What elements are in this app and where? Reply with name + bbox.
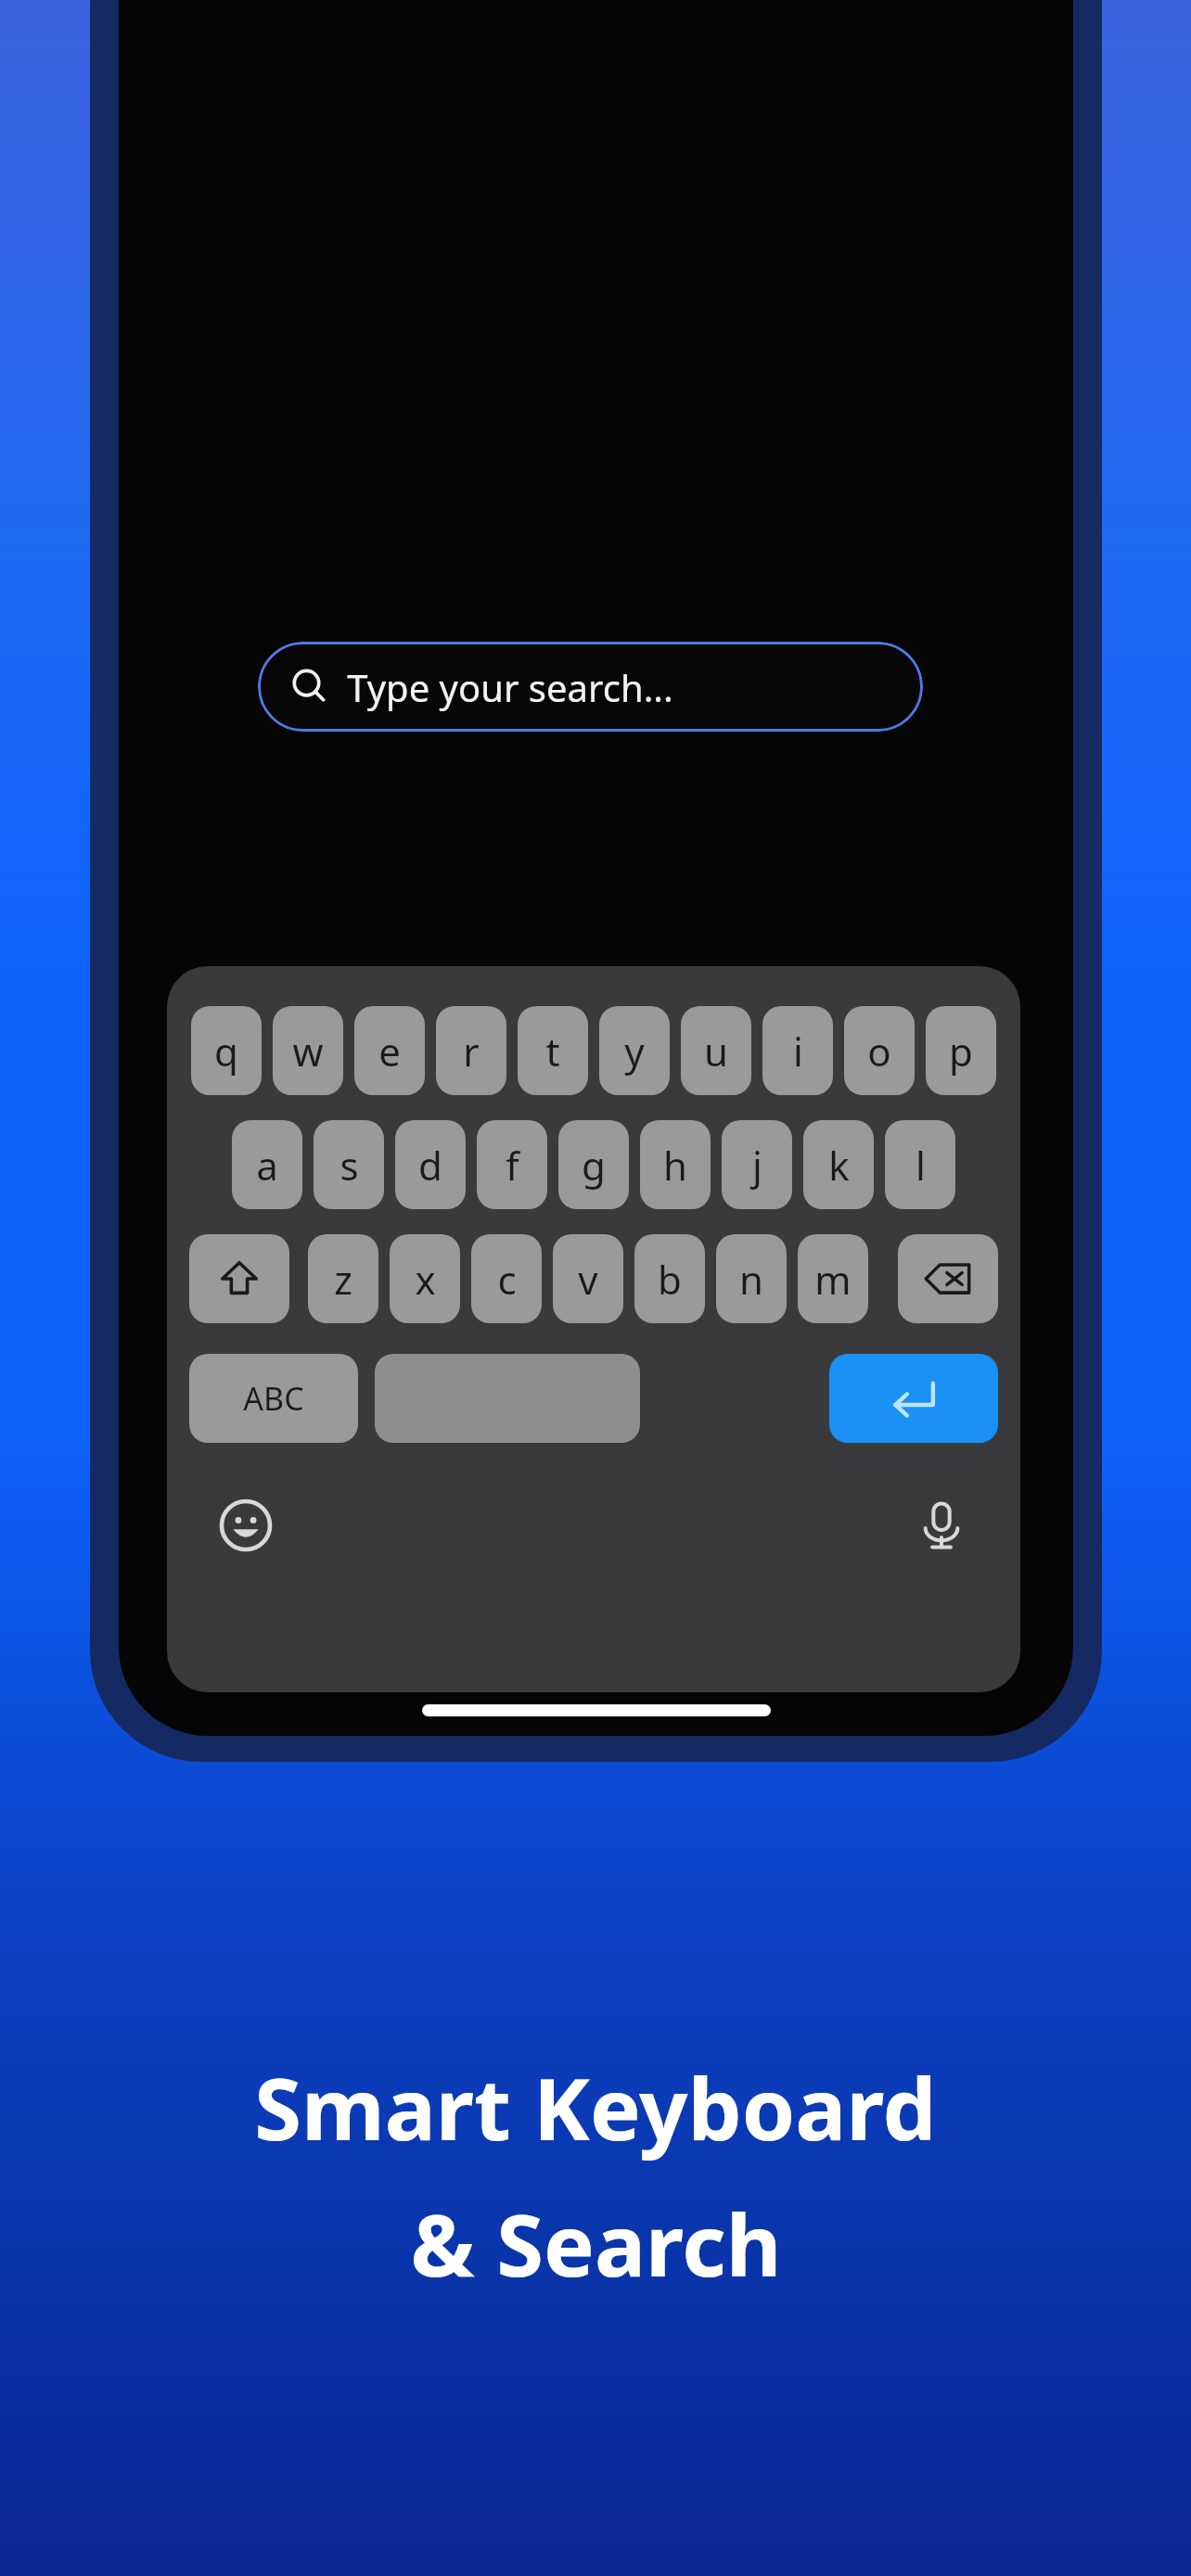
staticText: ABC [243, 1377, 304, 1420]
staticText: h [663, 1139, 687, 1192]
button[interactable]: u [681, 1006, 751, 1095]
button[interactable]: n [716, 1234, 787, 1323]
button[interactable]: f [477, 1120, 547, 1209]
button[interactable]: g [558, 1120, 629, 1209]
staticText: u [704, 1025, 728, 1078]
staticText: g [582, 1139, 606, 1192]
staticText: n [739, 1253, 763, 1306]
staticText: m [814, 1253, 852, 1306]
staticText: Type your search... [347, 662, 673, 712]
button[interactable]: e [354, 1006, 425, 1095]
button[interactable]: c [471, 1234, 542, 1323]
button[interactable]: y [599, 1006, 670, 1095]
button[interactable]: o [844, 1006, 915, 1095]
button[interactable]: Shift [189, 1234, 289, 1323]
button[interactable]: p [926, 1006, 996, 1095]
staticText: r [463, 1025, 480, 1078]
staticText: q [214, 1025, 238, 1078]
button[interactable]: Enter [829, 1354, 998, 1443]
staticText: f [506, 1139, 519, 1192]
staticText: & Search [410, 2186, 782, 2302]
button[interactable]: a [232, 1120, 302, 1209]
staticText: y [624, 1025, 645, 1078]
staticText: j [752, 1139, 762, 1192]
button[interactable]: Voice input [902, 1486, 981, 1565]
button[interactable]: k [803, 1120, 874, 1209]
button[interactable]: x [390, 1234, 460, 1323]
staticText: i [793, 1025, 803, 1078]
button[interactable]: h [640, 1120, 711, 1209]
staticText: k [828, 1139, 850, 1192]
staticText: b [658, 1253, 682, 1306]
button[interactable]: w [273, 1006, 343, 1095]
staticText: t [545, 1025, 560, 1078]
staticText: v [578, 1253, 598, 1306]
staticText: d [418, 1139, 442, 1192]
staticText: l [916, 1139, 926, 1192]
staticText: s [339, 1139, 359, 1192]
button[interactable]: ABC [189, 1354, 358, 1443]
staticText: c [497, 1253, 517, 1306]
button[interactable]: m [798, 1234, 868, 1323]
staticText: w [292, 1025, 324, 1078]
button[interactable]: j [722, 1120, 792, 1209]
staticText: Smart Keyboard [254, 2049, 937, 2165]
staticText: o [867, 1025, 891, 1078]
button[interactable]: i [762, 1006, 833, 1095]
button[interactable]: b [634, 1234, 705, 1323]
button[interactable]: z [308, 1234, 378, 1323]
staticText: x [415, 1253, 436, 1306]
button[interactable]: t [518, 1006, 588, 1095]
staticText: z [334, 1253, 352, 1306]
button[interactable]: Backspace [898, 1234, 998, 1323]
staticText: p [949, 1025, 973, 1078]
button[interactable]: Emoji [206, 1486, 286, 1565]
button[interactable]: Type your search... [258, 642, 923, 732]
staticText: a [256, 1139, 278, 1192]
button[interactable]: d [395, 1120, 466, 1209]
button[interactable]: q [191, 1006, 262, 1095]
staticText: e [378, 1025, 401, 1078]
button[interactable]: l [885, 1120, 955, 1209]
button[interactable]: r [436, 1006, 506, 1095]
button[interactable]: s [314, 1120, 384, 1209]
button[interactable]: Space [375, 1354, 640, 1443]
button[interactable]: v [553, 1234, 623, 1323]
